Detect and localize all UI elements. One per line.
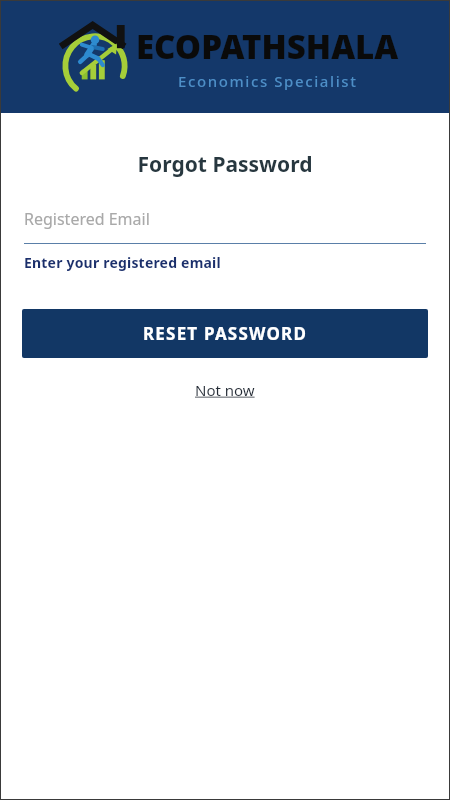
staticText: Registered Email: [24, 208, 150, 230]
staticText: Not now: [195, 380, 255, 400]
button[interactable]: RESET PASSWORD: [22, 309, 428, 358]
staticText: RESET PASSWORD: [143, 322, 308, 345]
other: Ecopathshala logo: [56, 17, 134, 97]
button[interactable]: Not now: [189, 378, 261, 402]
staticText: Forgot Password: [0, 150, 450, 179]
staticText: Economics Specialist: [178, 71, 358, 91]
staticText: Enter your registered email: [24, 253, 426, 272]
button[interactable]: Registered Email: [0, 208, 450, 244]
staticText: ECOPATHSHALA: [136, 24, 399, 69]
